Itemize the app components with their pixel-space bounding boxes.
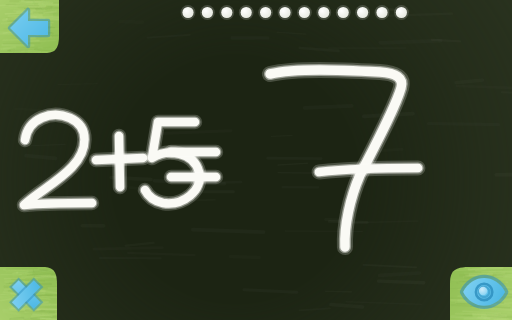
- button[interactable]: Show hint: [450, 267, 512, 320]
- button[interactable]: Back: [0, 0, 59, 53]
- button[interactable]: Clear: [0, 267, 57, 320]
